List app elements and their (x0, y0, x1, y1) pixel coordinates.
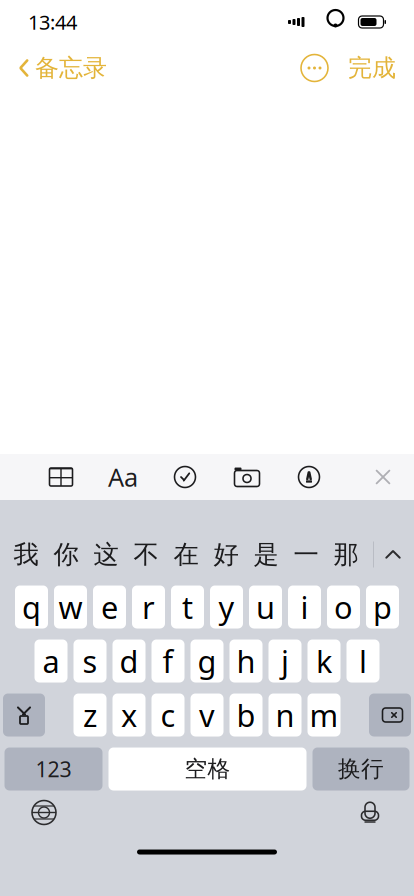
button[interactable]: 格式 (92, 455, 154, 499)
button[interactable]: y (210, 585, 243, 628)
button[interactable]: a (34, 639, 67, 682)
button[interactable]: 我 (6, 533, 46, 575)
staticText: u (256, 587, 275, 627)
staticText: 换行 (338, 755, 384, 783)
staticText: 123 (35, 755, 71, 783)
button[interactable]: Shift (3, 693, 45, 736)
button[interactable]: g (190, 639, 223, 682)
button[interactable]: 换行 (312, 747, 409, 790)
button[interactable]: 是 (246, 533, 286, 575)
button[interactable]: 切换键盘 (18, 792, 70, 832)
button[interactable]: h (229, 639, 262, 682)
staticText: Aa (108, 460, 138, 494)
button[interactable]: 不 (126, 533, 166, 575)
button[interactable]: b (229, 693, 262, 736)
button[interactable]: q (15, 585, 48, 628)
button[interactable]: 一 (286, 533, 326, 575)
button[interactable]: m (307, 693, 340, 736)
staticText: q (22, 587, 41, 627)
button[interactable]: 这 (86, 533, 126, 575)
button[interactable]: e (93, 585, 126, 628)
staticText: 是 (253, 539, 278, 570)
button[interactable]: 更多 (293, 48, 336, 87)
button[interactable]: 删除 (369, 693, 411, 736)
button[interactable]: i (288, 585, 321, 628)
button[interactable]: 你 (46, 533, 86, 575)
staticText: t (182, 587, 193, 627)
staticText: 那 (333, 539, 358, 570)
button[interactable]: 收起候选 (374, 533, 412, 575)
button[interactable]: 相机 (216, 455, 278, 499)
staticText: l (359, 641, 367, 681)
staticText: f (162, 641, 173, 681)
staticText: z (83, 695, 97, 735)
staticText: v (199, 695, 215, 735)
staticText: w (58, 587, 82, 627)
button[interactable]: f (151, 639, 184, 682)
button[interactable]: 标记 (278, 455, 340, 499)
staticText: p (373, 587, 392, 627)
staticText: d (119, 641, 138, 681)
staticText: y (218, 587, 234, 627)
staticText: x (121, 695, 137, 735)
button[interactable]: j (268, 639, 301, 682)
staticText: m (309, 695, 338, 735)
button[interactable]: u (249, 585, 282, 628)
staticText: 完成 (348, 53, 396, 83)
button[interactable]: 空格 (108, 747, 306, 790)
button[interactable]: 123 (4, 747, 102, 790)
button[interactable]: o (327, 585, 360, 628)
button[interactable]: 备忘录 (6, 47, 119, 89)
staticText: 在 (173, 539, 198, 570)
staticText: 你 (53, 539, 78, 570)
staticText: 备忘录 (35, 53, 107, 83)
staticText: c (160, 695, 175, 735)
staticText: 空格 (184, 755, 230, 783)
button[interactable]: 好 (206, 533, 246, 575)
staticText: 不 (133, 539, 158, 570)
staticText: e (101, 587, 118, 627)
staticText: s (82, 641, 97, 681)
staticText: a (42, 641, 59, 681)
button[interactable]: w (54, 585, 87, 628)
staticText: k (316, 641, 332, 681)
staticText: h (236, 641, 255, 681)
staticText: r (142, 587, 155, 627)
button[interactable]: 完成 (336, 47, 408, 89)
staticText: 好 (213, 539, 238, 570)
button[interactable]: n (268, 693, 301, 736)
staticText: 这 (93, 539, 118, 570)
button[interactable]: 那 (326, 533, 366, 575)
button[interactable]: l (346, 639, 379, 682)
button[interactable]: c (151, 693, 184, 736)
button[interactable]: x (112, 693, 145, 736)
staticText: i (300, 587, 308, 627)
button[interactable]: 表格 (30, 455, 92, 499)
button[interactable]: d (112, 639, 145, 682)
staticText: 我 (13, 539, 38, 570)
staticText: g (197, 641, 216, 681)
button[interactable]: 关闭 (360, 455, 406, 499)
staticText: j (281, 641, 289, 681)
staticText: b (236, 695, 255, 735)
button[interactable]: 清单 (154, 455, 216, 499)
button[interactable]: v (190, 693, 223, 736)
button[interactable]: 在 (166, 533, 206, 575)
button[interactable]: r (132, 585, 165, 628)
button[interactable]: s (73, 639, 106, 682)
staticText: o (334, 587, 353, 627)
button[interactable]: z (73, 693, 106, 736)
button[interactable]: p (366, 585, 399, 628)
staticText: n (275, 695, 294, 735)
button[interactable]: 语音输入 (344, 792, 396, 832)
button[interactable]: t (171, 585, 204, 628)
button[interactable]: k (307, 639, 340, 682)
staticText: 一 (293, 539, 318, 570)
staticText: 13:44 (28, 9, 77, 35)
